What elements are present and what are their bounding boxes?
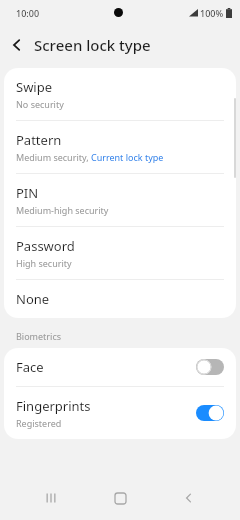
staticText: Pattern	[16, 131, 62, 149]
button[interactable]: Swipe	[4, 68, 236, 120]
button[interactable]: Home	[102, 480, 138, 516]
button[interactable]: Pattern	[4, 121, 236, 173]
staticText: High security	[16, 257, 72, 269]
button[interactable]: Toggle on	[196, 405, 224, 421]
staticText: None	[16, 290, 50, 308]
staticText: 10:00	[16, 7, 40, 19]
staticText: Screen lock type	[34, 35, 151, 55]
staticText: 100%	[200, 7, 224, 19]
button[interactable]: PIN	[4, 174, 236, 226]
staticText: Fingerprints	[16, 397, 91, 415]
button[interactable]: Back	[171, 480, 207, 516]
button[interactable]: Back	[0, 28, 34, 62]
button[interactable]: Recent apps	[33, 480, 69, 516]
button[interactable]: Fingerprints	[4, 387, 236, 439]
button[interactable]: Toggle off	[196, 359, 224, 375]
staticText: Medium security, Current lock type	[16, 151, 164, 163]
button[interactable]: Face	[4, 348, 236, 386]
staticText: Registered	[16, 417, 62, 429]
staticText: Swipe	[16, 78, 53, 96]
staticText: Password	[16, 237, 75, 255]
staticText: PIN	[16, 184, 39, 202]
button[interactable]: Password	[4, 227, 236, 279]
button[interactable]: None	[4, 280, 236, 318]
staticText: Medium-high security	[16, 204, 109, 216]
staticText: Face	[16, 358, 44, 376]
staticText: Biometrics	[16, 330, 62, 342]
staticText: No security	[16, 98, 64, 110]
